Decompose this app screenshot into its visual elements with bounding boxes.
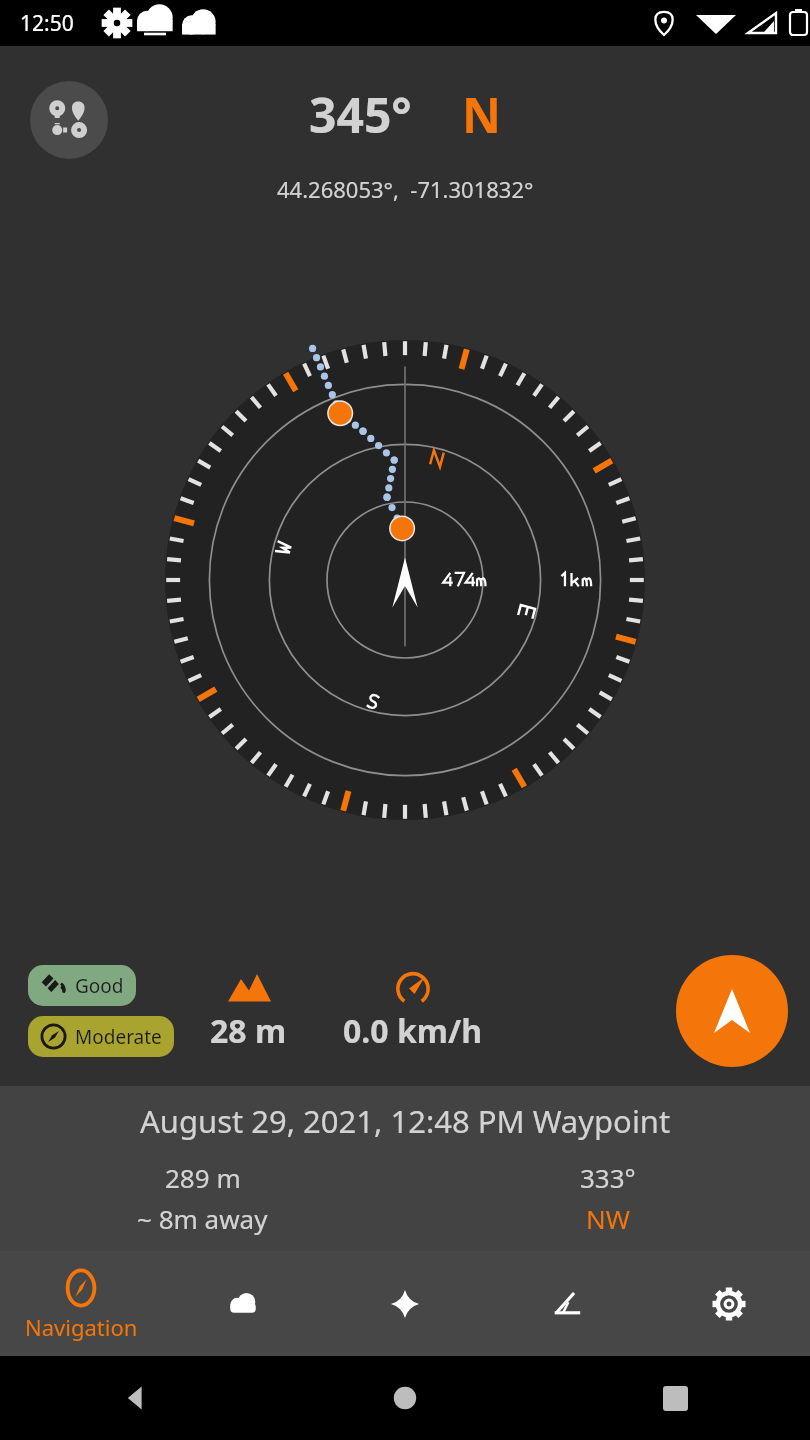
button[interactable]: Weather (162, 1251, 324, 1356)
staticText: Navigation (25, 1312, 138, 1342)
button[interactable]: Astronomy (324, 1251, 486, 1356)
staticText: 345° (309, 82, 412, 147)
staticText: Moderate (75, 1024, 162, 1050)
button[interactable]: Settings (648, 1251, 810, 1356)
staticText: 333° (580, 1160, 636, 1195)
button[interactable]: Waypoints (30, 81, 108, 159)
staticText: ~ 8m away (137, 1201, 268, 1236)
staticText: 44.268053°, -71.301832° (277, 174, 534, 204)
button[interactable]: Start navigation (676, 955, 788, 1067)
button[interactable]: August 29, 2021, 12:48 PM Waypoint (0, 1086, 810, 1251)
button[interactable]: Good (28, 965, 136, 1006)
button[interactable]: Navigation (0, 1251, 162, 1356)
staticText: Good (75, 973, 124, 999)
button[interactable]: Home (270, 1356, 540, 1440)
staticText: August 29, 2021, 12:48 PM Waypoint (140, 1100, 671, 1142)
staticText: N (462, 82, 502, 147)
button[interactable]: Clinometer (486, 1251, 648, 1356)
button[interactable]: Recents (540, 1356, 810, 1440)
staticText: 0.0 km/h (343, 1009, 483, 1053)
button[interactable]: Back (0, 1356, 270, 1440)
staticText: 289 m (165, 1160, 241, 1195)
staticText: 28 m (210, 1009, 287, 1053)
button[interactable]: Moderate (28, 1016, 174, 1057)
staticText: NW (586, 1201, 630, 1236)
staticText: 12:50 (20, 9, 74, 38)
